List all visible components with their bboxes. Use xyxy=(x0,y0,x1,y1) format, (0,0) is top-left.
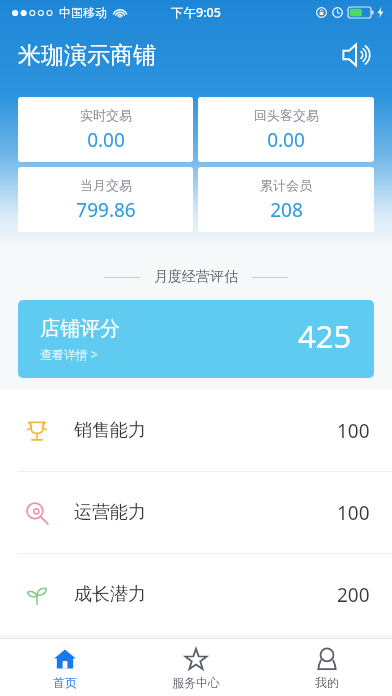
button[interactable]: 销售能力 xyxy=(0,390,392,471)
staticText: 208 xyxy=(270,197,303,223)
button[interactable]: 通知公告 xyxy=(334,33,378,77)
staticText: 425 xyxy=(298,315,352,357)
staticText: 当月交易 xyxy=(80,177,132,193)
staticText: 服务中心 xyxy=(172,675,220,690)
button[interactable]: 我的 xyxy=(261,639,392,696)
staticText: 运营能力 xyxy=(74,501,146,524)
button[interactable]: 服务中心 xyxy=(130,639,261,696)
staticText: 首页 xyxy=(53,675,77,690)
staticText: 0.00 xyxy=(87,127,125,153)
button[interactable]: 运营能力 xyxy=(0,472,392,553)
button[interactable]: 实时交易 xyxy=(18,97,193,162)
staticText: 回头客交易 xyxy=(254,107,319,123)
staticText: 我的 xyxy=(315,675,339,690)
button[interactable]: 首页 xyxy=(0,639,130,696)
staticText: 100 xyxy=(337,418,370,444)
staticText: 月度经营评估 xyxy=(154,268,238,286)
staticText: 销售能力 xyxy=(74,419,146,442)
staticText: 成长潜力 xyxy=(74,583,146,606)
staticText: 店铺评分 xyxy=(40,316,120,341)
staticText: 中国移动 xyxy=(59,5,107,20)
staticText: 米珈演示商铺 xyxy=(18,41,156,70)
staticText: 799.86 xyxy=(76,197,136,223)
button[interactable]: 当月交易 xyxy=(18,167,193,232)
staticText: 下午9:05 xyxy=(171,4,221,21)
button[interactable]: 累计会员 xyxy=(198,167,374,232)
button[interactable]: 回头客交易 xyxy=(198,97,374,162)
staticText: 累计会员 xyxy=(260,177,312,193)
staticText: 200 xyxy=(337,582,370,608)
button[interactable]: 成长潜力 xyxy=(0,554,392,635)
staticText: 0.00 xyxy=(267,127,305,153)
staticText: 100 xyxy=(337,500,370,526)
staticText: 查看详情 > xyxy=(40,346,98,362)
button[interactable]: 店铺评分 xyxy=(18,300,374,378)
staticText: 实时交易 xyxy=(80,107,132,123)
